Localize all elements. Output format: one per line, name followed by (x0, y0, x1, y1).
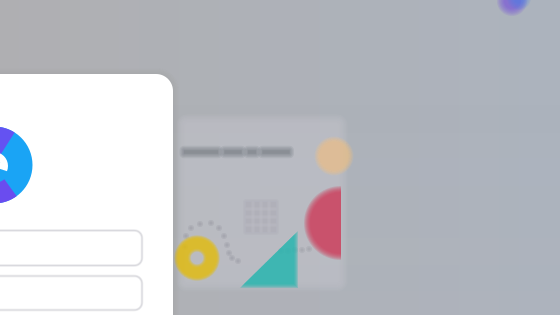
button[interactable]: Password field (0, 276, 142, 310)
button[interactable]: Email field (0, 230, 142, 265)
